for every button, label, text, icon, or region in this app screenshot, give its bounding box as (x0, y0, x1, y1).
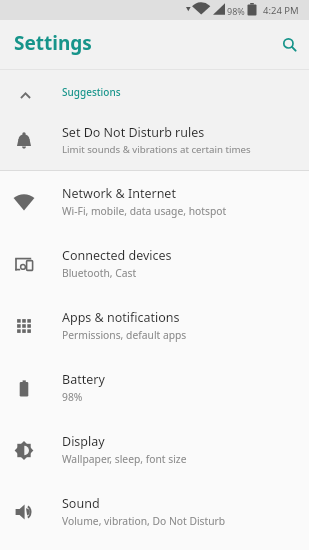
staticText: Network & Internet (62, 185, 176, 202)
button[interactable]: Connected devices (0, 233, 309, 295)
staticText: Limit sounds & vibrations at certain tim… (62, 143, 251, 156)
staticText: Set Do Not Disturb rules (62, 124, 205, 141)
button[interactable]: Sound (0, 481, 309, 543)
staticText: Battery (62, 371, 105, 388)
staticText: Display (62, 433, 105, 450)
button[interactable]: Apps & notifications (0, 295, 309, 357)
staticText: Wi-Fi, mobile, data usage, hotspot (62, 204, 227, 218)
staticText: Suggestions (62, 85, 121, 99)
button[interactable]: Suggestions (0, 70, 309, 109)
staticText: Connected devices (62, 247, 172, 264)
staticText: 4:24 PM (263, 4, 299, 17)
staticText: 98% (227, 5, 245, 17)
button[interactable]: Battery (0, 357, 309, 419)
staticText: Settings (14, 30, 92, 56)
staticText: Bluetooth, Cast (62, 266, 137, 280)
button[interactable]: Display (0, 419, 309, 481)
staticText: Permissions, default apps (62, 328, 187, 342)
button[interactable] (278, 33, 302, 57)
staticText: Volume, vibration, Do Not Disturb (62, 514, 226, 528)
button[interactable]: Set Do Not Disturb rules (0, 109, 309, 170)
button[interactable]: Network & Internet (0, 171, 309, 233)
staticText: Sound (62, 495, 100, 512)
staticText: Apps & notifications (62, 309, 180, 326)
staticText: 98% (62, 390, 83, 404)
staticText: Wallpaper, sleep, font size (62, 452, 187, 466)
